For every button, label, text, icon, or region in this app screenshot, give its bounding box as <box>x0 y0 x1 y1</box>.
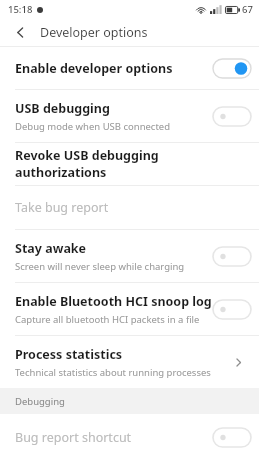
button[interactable]: Toggle off <box>213 247 251 266</box>
button[interactable]: Toggle off <box>213 428 251 447</box>
staticText: USB debugging <box>15 100 110 117</box>
staticText: Process statistics <box>15 346 123 363</box>
button[interactable]: Stay awake <box>0 230 259 282</box>
button[interactable]: Take bug report <box>0 186 259 229</box>
staticText: 67 <box>242 3 253 16</box>
staticText: Screen will never sleep while charging <box>15 260 185 273</box>
button[interactable]: Process statistics <box>0 336 259 388</box>
staticText: Stay awake <box>15 240 87 257</box>
button[interactable]: USB debugging <box>0 90 259 142</box>
staticText: Enable Bluetooth HCI snoop log <box>15 293 212 310</box>
staticText: Developer options <box>40 24 148 41</box>
button[interactable]: Revoke USB debugging authorizations <box>0 143 259 185</box>
button[interactable]: Enable developer options <box>0 47 259 89</box>
button[interactable]: Toggle off <box>213 300 251 319</box>
button[interactable]: Enable Bluetooth HCI snoop log <box>0 283 259 335</box>
button[interactable]: Back <box>0 18 40 46</box>
staticText: 15:18 <box>8 3 33 16</box>
staticText: Enable developer options <box>15 60 173 77</box>
staticText: Revoke USB debugging authorizations <box>15 147 251 181</box>
staticText: Debug mode when USB connected <box>15 120 171 133</box>
staticText: Technical statistics about running proce… <box>15 366 211 379</box>
button[interactable]: Toggle off <box>213 107 251 126</box>
staticText: Capture all bluetooth HCI packets in a f… <box>15 313 200 326</box>
button[interactable]: Bug report shortcut <box>0 414 259 461</box>
staticText: Take bug report <box>15 199 109 216</box>
staticText: Bug report shortcut <box>15 429 132 446</box>
button[interactable]: Toggle on <box>213 59 251 78</box>
staticText: Debugging <box>15 395 65 408</box>
